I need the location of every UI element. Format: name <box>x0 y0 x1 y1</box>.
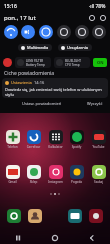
button[interactable]: Ustaw. powiadomień <box>19 100 65 107</box>
staticText: BLUELIGHT <box>65 59 82 63</box>
button[interactable]: Settings <box>98 13 107 22</box>
staticText: Ustawienia <box>11 80 32 85</box>
button[interactable]: ON <box>93 58 107 67</box>
staticText: Kalkulator <box>45 145 66 149</box>
button[interactable]: Camera <box>89 209 103 223</box>
button[interactable]: Sklep <box>23 165 44 184</box>
button[interactable]: Phone <box>7 209 21 223</box>
button[interactable]: Urządzenia <box>58 44 92 51</box>
button[interactable]: Sound <box>21 25 35 39</box>
staticText: CPU Temp <box>65 63 80 67</box>
staticText: YouTube <box>88 145 109 149</box>
staticText: Spotify <box>66 145 87 149</box>
staticText: Carrefour <box>23 145 44 149</box>
button[interactable]: Instagram <box>45 165 66 184</box>
staticText: Urządzenia <box>67 45 89 50</box>
button[interactable]: BLUELIGHT <box>54 57 90 68</box>
button[interactable]: YouTube <box>88 130 109 149</box>
button[interactable]: Recents <box>0 232 36 244</box>
button[interactable]: Wi-Fi <box>4 25 18 39</box>
staticText: Ciche powiadomienia <box>4 70 55 77</box>
button[interactable]: Spotify <box>66 130 87 149</box>
button[interactable]: Home <box>36 232 73 244</box>
staticText: Szukaj <box>88 180 109 184</box>
button[interactable]: Back <box>73 232 110 244</box>
button[interactable]: Carrefour <box>23 130 44 149</box>
button[interactable]: Kalkulator <box>45 130 66 149</box>
button[interactable]: LENS FILTER <box>15 57 51 68</box>
button[interactable]: Wyczyść <box>84 100 106 107</box>
button[interactable]: Battery <box>75 25 89 39</box>
staticText: LENS FILTER <box>26 59 44 63</box>
staticText: Ustaw. powiadomień <box>22 101 62 106</box>
button[interactable]: Power <box>87 13 96 22</box>
button[interactable]: Szukaj <box>88 165 109 184</box>
button[interactable]: Telefon <box>2 130 23 149</box>
button[interactable]: Contacts <box>28 209 42 223</box>
staticText: ON <box>97 60 104 65</box>
staticText: Pogoda <box>66 180 87 184</box>
button[interactable]: Ustawienia <box>2 78 108 98</box>
staticText: Telefon <box>2 145 23 149</box>
button[interactable]: Flashlight <box>92 25 106 39</box>
staticText: Dowiedz się, jak zmieniać swój telefon w… <box>5 87 108 97</box>
staticText: Instagram <box>45 180 66 184</box>
button[interactable]: Messages <box>68 209 82 223</box>
staticText: pon., 17 lut <box>4 14 36 22</box>
staticText: Battery Temp <box>26 63 45 67</box>
button[interactable]: Bluetooth <box>39 25 53 39</box>
staticText: Sklep <box>23 180 44 184</box>
staticText: 14:16 <box>34 80 45 85</box>
staticText: 15:16 <box>4 3 17 10</box>
staticText: Gmail <box>2 180 23 184</box>
staticText: Multimedia <box>27 45 49 50</box>
staticText: Wyczyść <box>87 101 103 106</box>
staticText: ·ıll 78% <box>89 3 106 10</box>
button[interactable]: Pogoda <box>66 165 87 184</box>
button[interactable]: Gmail <box>2 165 23 184</box>
button[interactable]: Airplane mode <box>57 25 71 39</box>
button[interactable]: Multimedia <box>18 44 52 51</box>
